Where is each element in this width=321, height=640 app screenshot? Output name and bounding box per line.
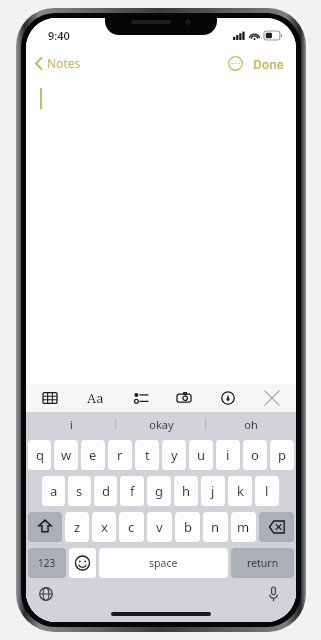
button[interactable]: a <box>42 476 65 506</box>
button[interactable]: p <box>270 440 294 470</box>
staticText: c <box>128 518 135 536</box>
button[interactable]: l <box>255 476 279 506</box>
staticText: x <box>101 518 108 536</box>
button[interactable]: return <box>231 548 294 578</box>
staticText: p <box>278 446 286 464</box>
staticText: u <box>197 446 206 464</box>
staticText: t <box>145 446 150 464</box>
button[interactable]: u <box>189 440 213 470</box>
button[interactable]: k <box>228 476 252 506</box>
button[interactable]: More options <box>222 50 249 77</box>
button[interactable]: z <box>65 512 89 542</box>
staticText: b <box>184 518 192 536</box>
button[interactable]: Insert table <box>40 387 60 409</box>
staticText: return <box>247 556 279 570</box>
button[interactable]: w <box>54 440 78 470</box>
staticText: r <box>117 446 123 464</box>
staticText: a <box>50 482 58 500</box>
staticText: 123 <box>38 556 56 570</box>
button[interactable]: c <box>119 512 144 542</box>
staticText: Done <box>253 56 284 72</box>
button[interactable]: Done <box>249 52 296 76</box>
staticText: h <box>182 482 191 500</box>
staticText: oh <box>244 417 258 432</box>
staticText: f <box>130 482 135 500</box>
button[interactable]: Close keyboard <box>262 387 282 409</box>
staticText: q <box>36 446 44 464</box>
button[interactable]: Notes <box>26 52 89 74</box>
button[interactable]: Checklist <box>131 387 151 409</box>
staticText: g <box>155 482 163 500</box>
button[interactable]: Change keyboard <box>36 584 56 604</box>
staticText: space <box>149 556 178 570</box>
button[interactable]: v <box>147 512 172 542</box>
staticText: Aa <box>87 389 104 407</box>
staticText: e <box>89 446 97 464</box>
staticText: l <box>265 482 269 500</box>
staticText: w <box>61 446 72 464</box>
button[interactable]: b <box>175 512 200 542</box>
button[interactable]: Emoji <box>69 548 96 578</box>
staticText: d <box>102 482 110 500</box>
button[interactable]: n <box>203 512 228 542</box>
button[interactable]: d <box>94 476 117 506</box>
staticText: j <box>211 482 215 500</box>
staticText: i <box>226 446 230 464</box>
button[interactable]: Aa <box>84 387 107 409</box>
staticText: okay <box>149 417 174 432</box>
button[interactable]: Camera <box>174 387 194 409</box>
button[interactable]: t <box>135 440 159 470</box>
button[interactable]: r <box>108 440 132 470</box>
button[interactable]: i <box>216 440 240 470</box>
button[interactable]: space <box>99 548 228 578</box>
staticText: n <box>211 518 220 536</box>
staticText: s <box>76 482 83 500</box>
button[interactable]: g <box>147 476 171 506</box>
staticText: 9:40 <box>48 28 70 43</box>
button[interactable]: Dictation <box>265 584 282 605</box>
button[interactable]: Backspace <box>259 512 294 542</box>
button[interactable]: h <box>174 476 198 506</box>
button[interactable]: y <box>162 440 186 470</box>
button[interactable]: oh <box>206 412 296 436</box>
staticText: m <box>237 518 250 536</box>
button[interactable]: e <box>81 440 105 470</box>
button[interactable]: x <box>92 512 116 542</box>
staticText: z <box>74 518 81 536</box>
staticText: y <box>171 446 178 464</box>
staticText: i <box>70 417 73 432</box>
button[interactable]: Shift <box>28 512 62 542</box>
staticText: k <box>237 482 244 500</box>
button[interactable]: m <box>231 512 256 542</box>
staticText: v <box>156 518 163 536</box>
button[interactable]: okay <box>116 412 206 436</box>
button[interactable]: Markup <box>218 387 238 409</box>
button[interactable]: o <box>243 440 267 470</box>
staticText: o <box>251 446 259 464</box>
button[interactable]: f <box>120 476 144 506</box>
button[interactable]: j <box>201 476 225 506</box>
button[interactable]: q <box>28 440 51 470</box>
button[interactable]: i <box>26 412 116 436</box>
button[interactable]: 123 <box>28 548 66 578</box>
button[interactable]: s <box>68 476 91 506</box>
staticText: Notes <box>47 55 81 71</box>
